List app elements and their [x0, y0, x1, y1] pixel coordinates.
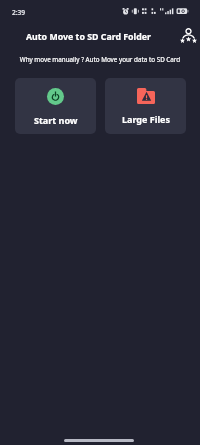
staticText: Why move manually ? Auto Move your data … — [0, 55, 200, 64]
staticText: Auto Move to SD Card Folder — [26, 31, 151, 43]
button[interactable]: Premium account — [176, 22, 200, 46]
button[interactable]: Large Files — [105, 78, 186, 134]
staticText: 2:39 — [12, 8, 26, 17]
button[interactable]: Start now — [15, 78, 96, 134]
staticText: Start now — [34, 114, 78, 126]
staticText: Large Files — [122, 113, 170, 125]
